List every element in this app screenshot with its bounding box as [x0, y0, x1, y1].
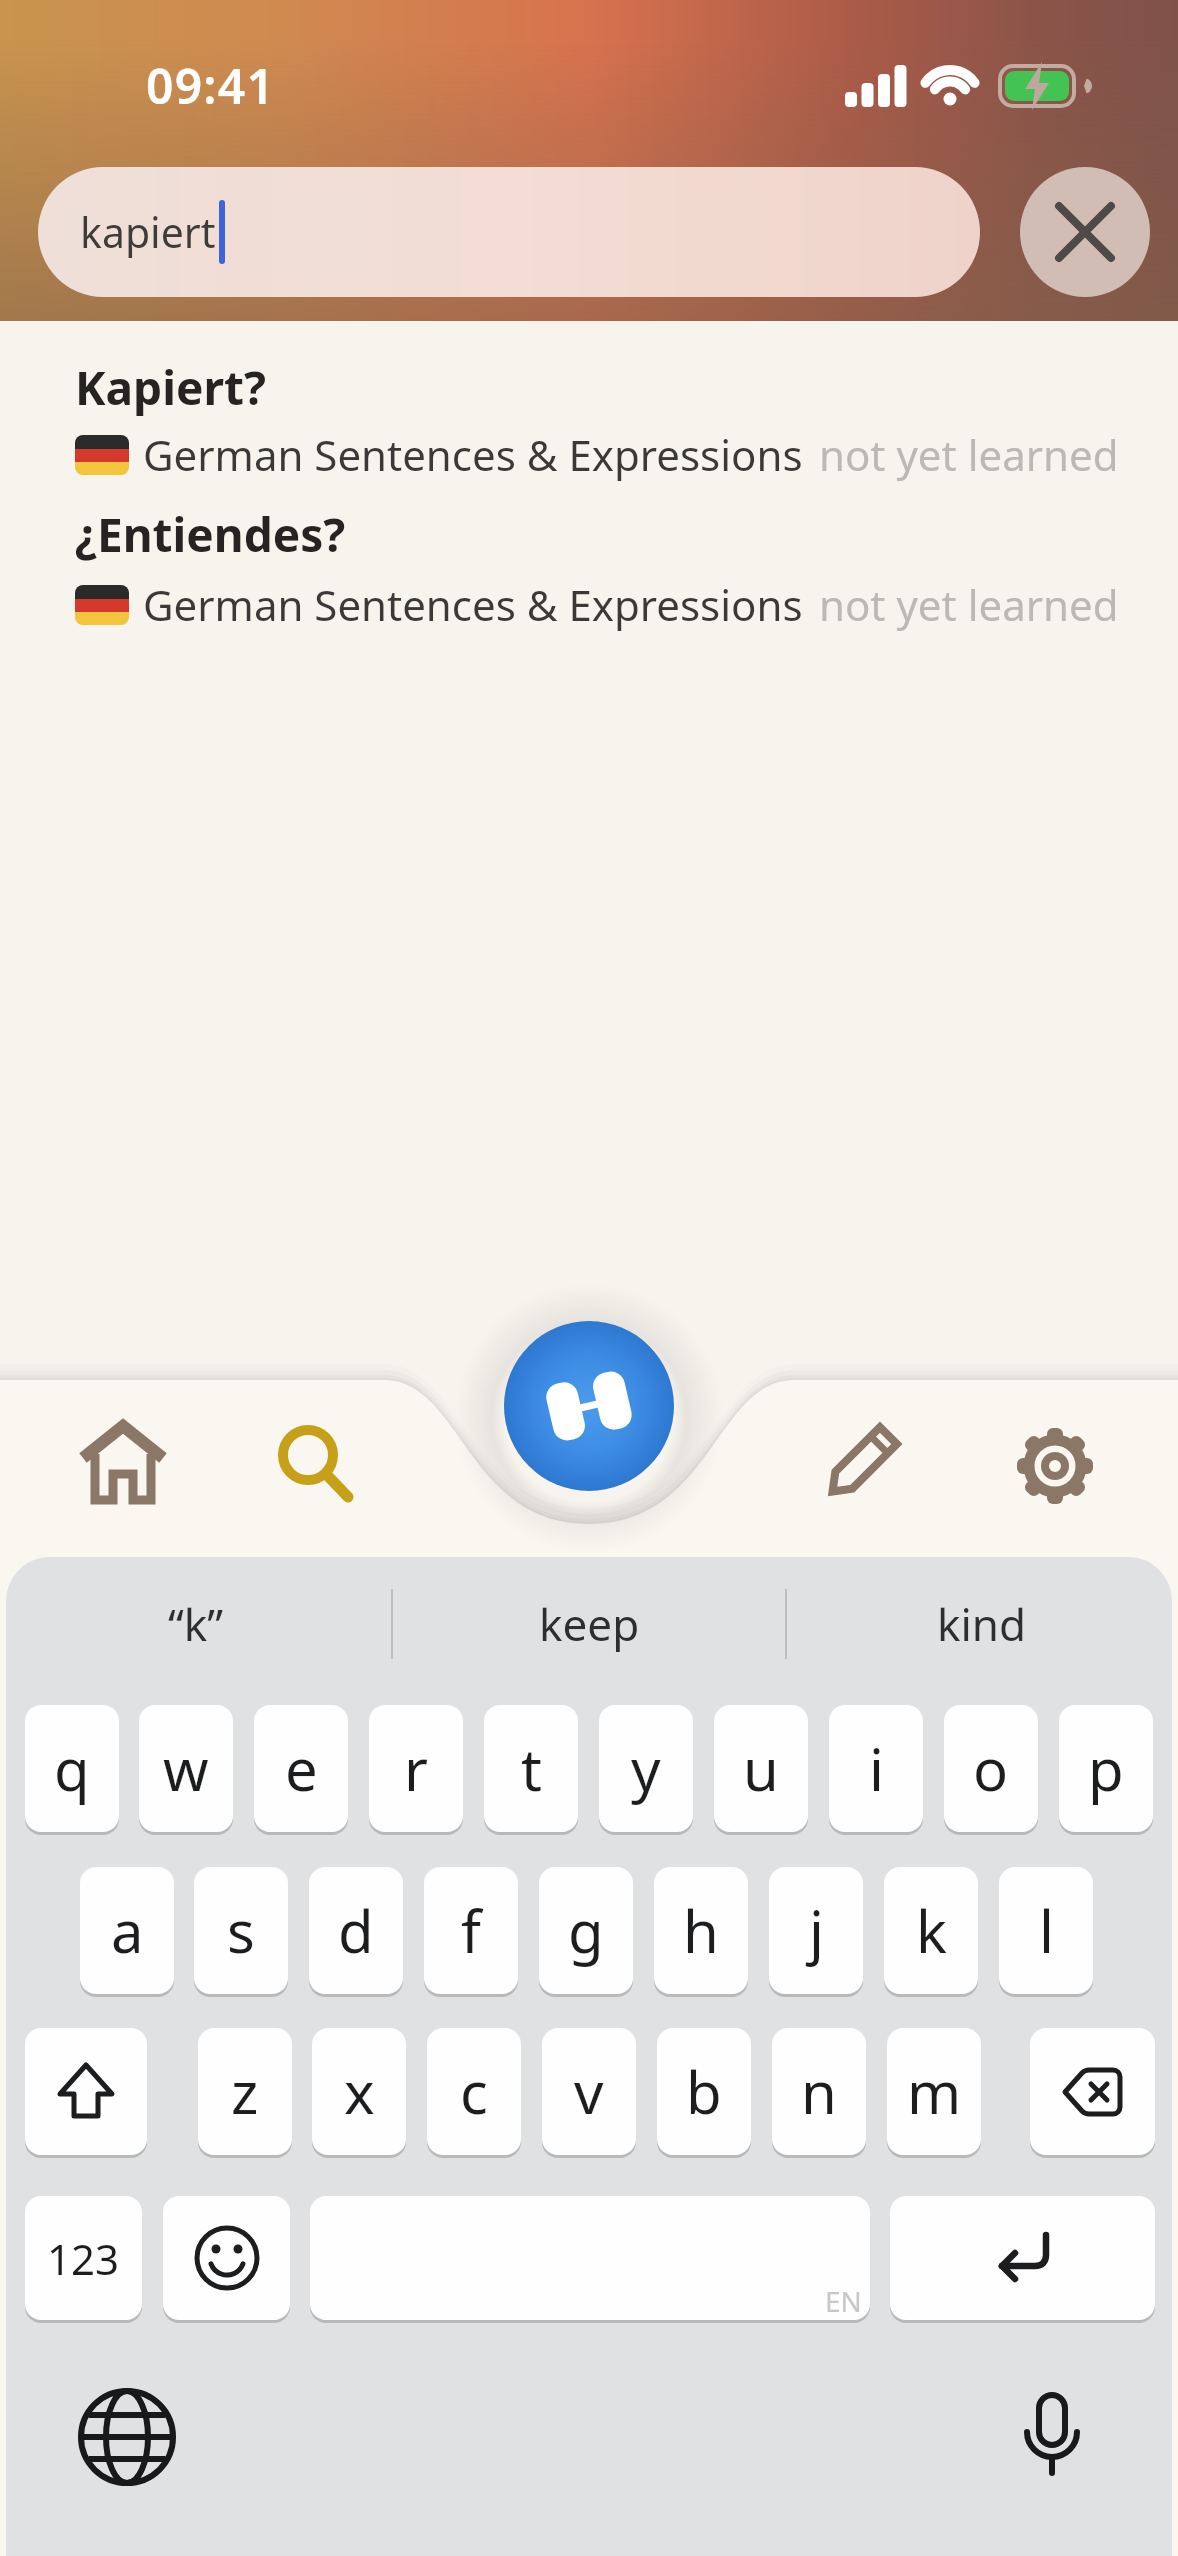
staticText: not yet learned	[819, 576, 1119, 633]
button[interactable]: f	[424, 1867, 518, 1994]
button[interactable]	[504, 1321, 674, 1491]
staticText: 123	[47, 2230, 120, 2287]
button[interactable]	[310, 2196, 870, 2320]
staticText: German Sentences & Expressions	[143, 576, 803, 633]
button[interactable]: x	[312, 2028, 406, 2155]
button[interactable]: kind	[852, 1585, 1112, 1663]
button[interactable]: g	[539, 1867, 633, 1994]
button[interactable]: q	[25, 1705, 119, 1832]
button[interactable]: e	[254, 1705, 348, 1832]
button[interactable]: v	[542, 2028, 636, 2155]
staticText: y	[631, 1729, 661, 1808]
button[interactable]: German Sentences & Expressions	[75, 576, 1119, 633]
button[interactable]	[1020, 167, 1150, 297]
button[interactable]	[1030, 2028, 1155, 2155]
staticText: g	[568, 1891, 604, 1970]
staticText: German Sentences & Expressions	[143, 426, 803, 483]
button[interactable]: c	[427, 2028, 521, 2155]
staticText: z	[231, 2052, 259, 2131]
staticText: f	[461, 1891, 481, 1970]
staticText: o	[973, 1729, 1009, 1808]
staticText: kapiert	[80, 204, 216, 260]
button[interactable]: z	[198, 2028, 292, 2155]
staticText: b	[686, 2052, 722, 2131]
button[interactable]: “k”	[66, 1585, 326, 1663]
staticText: p	[1088, 1729, 1124, 1808]
button[interactable]: o	[944, 1705, 1038, 1832]
staticText: c	[460, 2052, 488, 2131]
button[interactable]	[890, 2196, 1155, 2320]
staticText: i	[869, 1729, 884, 1808]
button[interactable]	[25, 2028, 147, 2155]
button[interactable]: keep	[459, 1585, 719, 1663]
button[interactable]	[1000, 2385, 1104, 2489]
button[interactable]: 123	[25, 2196, 142, 2320]
staticText: 09:41	[146, 53, 276, 118]
button[interactable]: kapiert	[38, 167, 980, 297]
staticText: k	[916, 1891, 947, 1970]
staticText: j	[809, 1891, 824, 1970]
staticText: d	[338, 1891, 374, 1970]
staticText: kind	[937, 1594, 1027, 1654]
button[interactable]: Kapiert?	[75, 356, 266, 419]
button[interactable]: i	[829, 1705, 923, 1832]
button[interactable]: a	[80, 1867, 174, 1994]
button[interactable]	[75, 2385, 179, 2489]
button[interactable]	[275, 1424, 355, 1504]
staticText: h	[683, 1891, 719, 1970]
button[interactable]: ¿Entiendes?	[75, 503, 346, 566]
staticText: x	[344, 2052, 375, 2131]
staticText: v	[574, 2052, 604, 2131]
staticText: n	[801, 2052, 837, 2131]
button[interactable]	[163, 2196, 290, 2320]
button[interactable]: t	[484, 1705, 578, 1832]
button[interactable]: m	[887, 2028, 981, 2155]
button[interactable]: p	[1059, 1705, 1153, 1832]
staticText: not yet learned	[819, 426, 1119, 483]
button[interactable]	[83, 1428, 163, 1506]
button[interactable]: d	[309, 1867, 403, 1994]
staticText: w	[163, 1729, 209, 1808]
button[interactable]: German Sentences & Expressions	[75, 426, 1119, 483]
staticText: “k”	[168, 1594, 224, 1654]
staticText: Kapiert?	[75, 356, 266, 419]
button[interactable]: j	[769, 1867, 863, 1994]
button[interactable]: k	[884, 1867, 978, 1994]
button[interactable]: s	[194, 1867, 288, 1994]
button[interactable]: h	[654, 1867, 748, 1994]
button[interactable]: l	[999, 1867, 1093, 1994]
button[interactable]	[1015, 1426, 1095, 1506]
staticText: s	[227, 1891, 255, 1970]
staticText: u	[743, 1729, 779, 1808]
staticText: keep	[539, 1594, 640, 1654]
staticText: t	[521, 1729, 542, 1808]
staticText: ¿Entiendes?	[75, 503, 346, 566]
staticText: a	[111, 1891, 144, 1970]
staticText: EN	[825, 2282, 862, 2320]
staticText: e	[285, 1729, 318, 1808]
button[interactable]: y	[599, 1705, 693, 1832]
button[interactable]: b	[657, 2028, 751, 2155]
button[interactable]: r	[369, 1705, 463, 1832]
button[interactable]: n	[772, 2028, 866, 2155]
staticText: r	[404, 1729, 428, 1808]
button[interactable]: w	[139, 1705, 233, 1832]
staticText: l	[1039, 1891, 1054, 1970]
staticText: q	[54, 1729, 90, 1808]
staticText: m	[907, 2052, 962, 2131]
button[interactable]	[818, 1426, 898, 1506]
button[interactable]: u	[714, 1705, 808, 1832]
